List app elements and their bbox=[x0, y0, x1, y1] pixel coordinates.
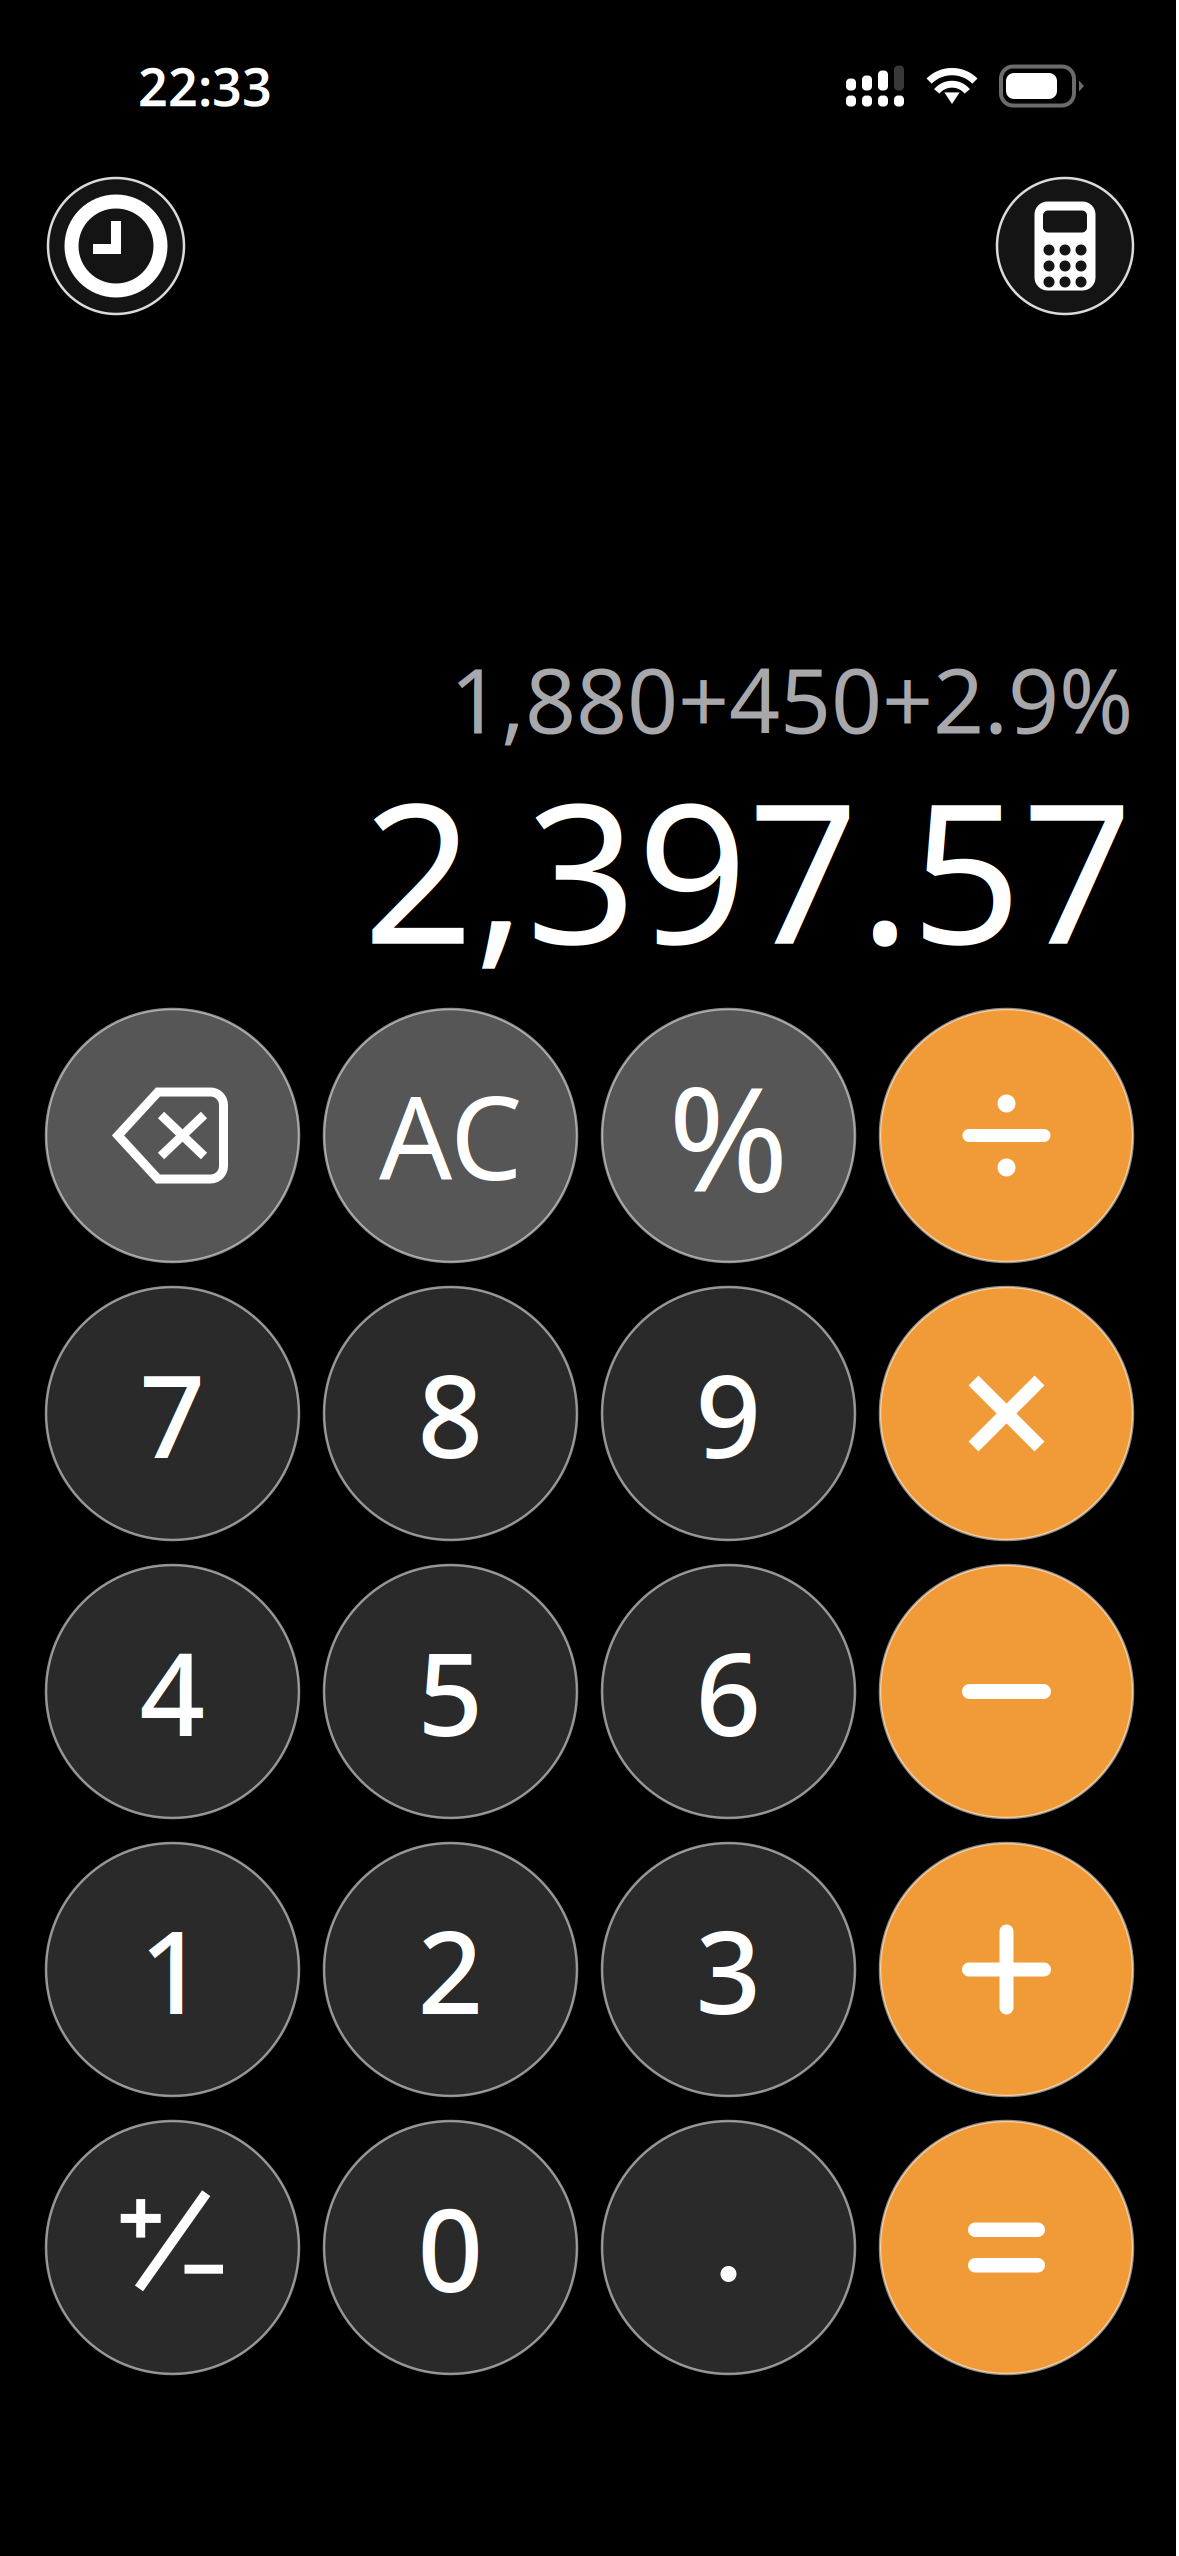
staticText: AC bbox=[379, 1059, 522, 1212]
staticText: 3 bbox=[695, 1893, 761, 2046]
button[interactable]: Percent bbox=[602, 1009, 855, 1262]
button[interactable]: History bbox=[48, 178, 184, 314]
button[interactable]: Subtract bbox=[880, 1565, 1133, 1818]
staticText: 1 bbox=[139, 1893, 205, 2046]
button[interactable]: Multiply bbox=[880, 1287, 1133, 1540]
staticText: 9 bbox=[695, 1337, 761, 1490]
button[interactable]: 7 bbox=[46, 1287, 299, 1540]
button[interactable]: Equals bbox=[880, 2121, 1133, 2374]
staticText: 7 bbox=[139, 1337, 205, 1490]
staticText: 22:33 bbox=[138, 51, 272, 121]
staticText: 5 bbox=[417, 1615, 483, 1768]
staticText: 2 bbox=[417, 1893, 483, 2046]
button[interactable]: 9 bbox=[602, 1287, 855, 1540]
staticText: 1,880+450+2.9% bbox=[450, 640, 1133, 758]
button[interactable]: Delete bbox=[46, 1009, 299, 1262]
button[interactable]: 3 bbox=[602, 1843, 855, 2096]
button[interactable]: 1 bbox=[46, 1843, 299, 2096]
staticText: 6 bbox=[695, 1615, 761, 1768]
staticText: 2,397.57 bbox=[363, 740, 1133, 997]
staticText: 4 bbox=[139, 1615, 205, 1768]
button[interactable]: 5 bbox=[324, 1565, 577, 1818]
button[interactable]: 0 bbox=[324, 2121, 577, 2374]
button[interactable]: Divide bbox=[880, 1009, 1133, 1262]
button[interactable]: 4 bbox=[46, 1565, 299, 1818]
staticText: 0 bbox=[417, 2171, 483, 2324]
button[interactable]: 8 bbox=[324, 1287, 577, 1540]
button[interactable]: Add bbox=[880, 1843, 1133, 2096]
button[interactable]: Calculator mode bbox=[997, 178, 1133, 314]
button[interactable]: 6 bbox=[602, 1565, 855, 1818]
button[interactable]: Plus minus bbox=[46, 2121, 299, 2374]
staticText: % bbox=[668, 1039, 789, 1232]
button[interactable]: Decimal point bbox=[602, 2121, 855, 2374]
button[interactable]: 2 bbox=[324, 1843, 577, 2096]
staticText: 8 bbox=[417, 1337, 483, 1490]
button[interactable]: All clear bbox=[324, 1009, 577, 1262]
